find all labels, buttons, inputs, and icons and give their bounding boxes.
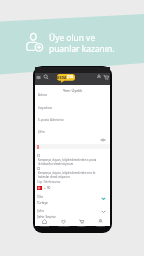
button[interactable]: Ülke	[37, 195, 101, 205]
staticText: Şehir Seçiniz	[37, 215, 56, 219]
button[interactable]: Anasayfa	[36, 219, 53, 227]
button[interactable]: Kampanya, duyuru, bilgilendirmelerden sm…	[36, 167, 108, 179]
button[interactable]: Cart	[103, 74, 109, 80]
staticText: Favorilerim	[58, 225, 70, 227]
button[interactable]: Şehir	[37, 209, 101, 219]
staticText: E-posta Adresiniz	[38, 118, 64, 122]
button[interactable]: Sepetim	[73, 219, 90, 227]
button[interactable]: BEDASTAS logo	[57, 74, 75, 83]
staticText: Soyadınız	[38, 106, 53, 110]
staticText: Adınız	[38, 93, 48, 97]
staticText: Cep Telefonunuz	[37, 180, 61, 184]
other: Select city	[101, 209, 106, 214]
staticText: Sepetim	[77, 225, 86, 227]
button[interactable]: Favorilerim	[55, 219, 72, 227]
staticText: Anasayfa	[40, 225, 49, 227]
button[interactable]: Hesabım	[92, 219, 109, 227]
staticText: Ülke	[37, 195, 44, 199]
button[interactable]: Show password	[100, 137, 106, 143]
staticText: Üye olun ve	[49, 32, 96, 43]
staticText: ŞTAŞ	[67, 74, 75, 80]
button[interactable]: Adınız	[35, 89, 110, 100]
button[interactable]: Menu	[36, 75, 41, 80]
staticText: Şifre	[38, 130, 45, 134]
button[interactable]: Soyadınız	[35, 102, 110, 113]
button[interactable]: E-posta Adresiniz	[35, 114, 110, 125]
button[interactable]: + 90	[37, 186, 77, 190]
staticText: Türkiye	[37, 201, 48, 205]
button[interactable]: Kampanya, duyuru, bilgilendirmelerden e-…	[36, 154, 108, 166]
staticText: haberdar olmak istiyorum.	[38, 175, 71, 179]
button[interactable]: Search	[43, 74, 49, 80]
staticText: Hesabım	[96, 225, 105, 227]
staticText: Şehir	[37, 209, 45, 213]
staticText: Yeni Üyelik	[63, 88, 83, 93]
staticText: BEDA	[57, 75, 67, 80]
staticText: ile haberdar olmak istiyorum.	[38, 162, 74, 166]
other: Select country	[101, 196, 106, 201]
staticText: Kampanya, duyuru, bilgilendirmelerden sm…	[38, 171, 96, 175]
staticText: puanlar kazanın.	[49, 43, 115, 54]
button[interactable]: Account	[96, 74, 102, 80]
staticText: Kampanya, duyuru, bilgilendirmelerden e-…	[38, 158, 97, 162]
staticText: + 90	[44, 186, 51, 190]
button[interactable]: Şifre	[35, 126, 110, 137]
